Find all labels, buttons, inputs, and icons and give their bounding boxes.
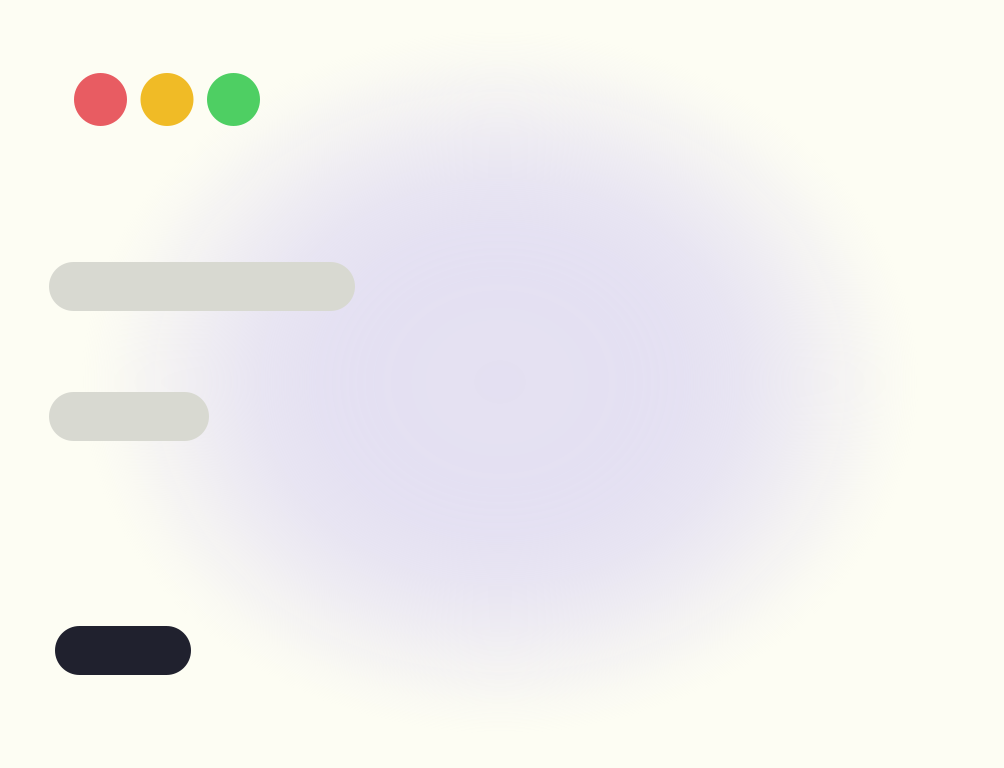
button[interactable]: Close window <box>74 73 127 126</box>
button[interactable]: Continue <box>55 626 191 675</box>
button[interactable]: Zoom window <box>207 73 260 126</box>
button[interactable]: Minimize window <box>140 73 193 126</box>
